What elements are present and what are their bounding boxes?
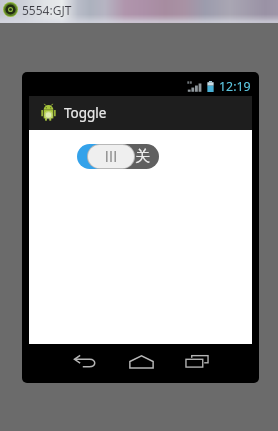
button[interactable]: Back [57, 342, 113, 381]
staticText: 关 [135, 147, 150, 166]
button[interactable]: Home [113, 342, 169, 381]
staticText: 5554:GJT [22, 2, 72, 18]
staticText: 12:19 [219, 78, 251, 95]
button[interactable]: 关 [77, 144, 159, 169]
button[interactable]: Toggle [29, 96, 252, 130]
staticText: Toggle [64, 104, 107, 122]
button[interactable]: Recent apps [169, 342, 225, 381]
